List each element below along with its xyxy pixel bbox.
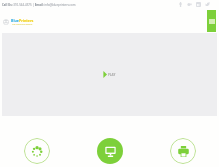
button[interactable]: Printing services [170,138,196,164]
button[interactable]: Blue [3,18,34,25]
staticText: Blue [11,18,19,23]
button[interactable]: Menu [207,10,216,32]
button[interactable]: LinkedIn [194,0,203,9]
button[interactable]: Design services [24,138,50,164]
button[interactable]: Web services [97,138,123,164]
staticText: Printers [19,18,34,23]
button[interactable]: Google Plus [185,0,194,9]
button[interactable]: Facebook [176,0,185,9]
staticText: THE COMPLETE SERVICE [12,23,33,25]
staticText: PLAY [108,73,116,77]
button[interactable]: Twitter [203,0,212,9]
staticText: Call Us: 310-544-4575 | Email: info@blue… [2,3,76,7]
